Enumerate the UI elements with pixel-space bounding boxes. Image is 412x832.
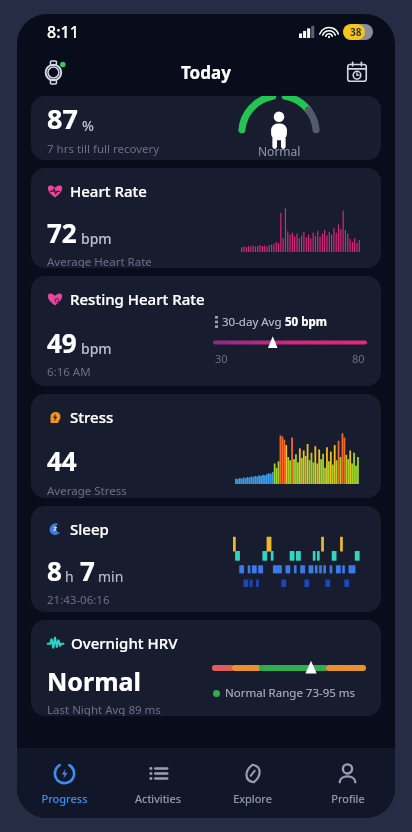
button[interactable]: 87 [31,96,381,160]
staticText: Today [181,61,231,84]
staticText: Explore [233,791,272,806]
staticText: % [82,116,94,135]
staticText: 8 [47,553,62,588]
staticText: 7 [80,553,95,588]
staticText: Normal [258,143,301,159]
staticText: Average Stress [47,483,127,498]
button[interactable]: Stress [31,394,381,498]
staticText: bpm [81,339,112,358]
staticText: 72 [47,215,77,250]
button[interactable]: Activities [111,754,205,818]
staticText: bpm [81,229,112,248]
staticText: Normal Range 73-95 ms [225,685,356,701]
staticText: Sleep [70,519,109,539]
staticText: Activities [135,791,181,806]
staticText: 80 [352,351,365,366]
staticText: 7 hrs till full recovery [47,141,160,157]
staticText: 21:43-06:16 [47,592,110,608]
button[interactable]: Heart Rate [31,168,381,268]
button[interactable]: Resting Heart Rate [31,276,381,386]
staticText: 49 [47,325,77,360]
button[interactable]: Progress [17,754,111,818]
staticText: Normal [47,664,141,698]
button[interactable]: Calendar [337,52,377,92]
staticText: Resting Heart Rate [70,289,205,309]
staticText: min [98,567,124,586]
staticText: Stress [70,407,114,427]
staticText: Overnight HRV [71,633,178,653]
staticText: h [65,567,74,586]
staticText: 30-day Avg [222,314,285,330]
staticText: 44 [47,443,77,478]
staticText: 38 [350,25,362,39]
button[interactable]: Explore [205,754,300,818]
staticText: Progress [41,791,88,806]
staticText: 87 [47,100,78,137]
button[interactable]: Connected watch [35,52,75,92]
button[interactable]: Sleep [31,506,381,612]
button[interactable]: Overnight HRV [31,620,381,716]
button[interactable]: Profile [300,754,395,818]
staticText: Heart Rate [70,181,147,201]
staticText: 6:16 AM [47,364,91,380]
staticText: 30 [215,351,228,366]
staticText: 8:11 [47,21,79,43]
staticText: Average Heart Rate [47,254,152,268]
staticText: 50 bpm [285,314,327,330]
staticText: Profile [331,791,365,806]
staticText: Last Night Avg 89 ms [47,702,161,716]
